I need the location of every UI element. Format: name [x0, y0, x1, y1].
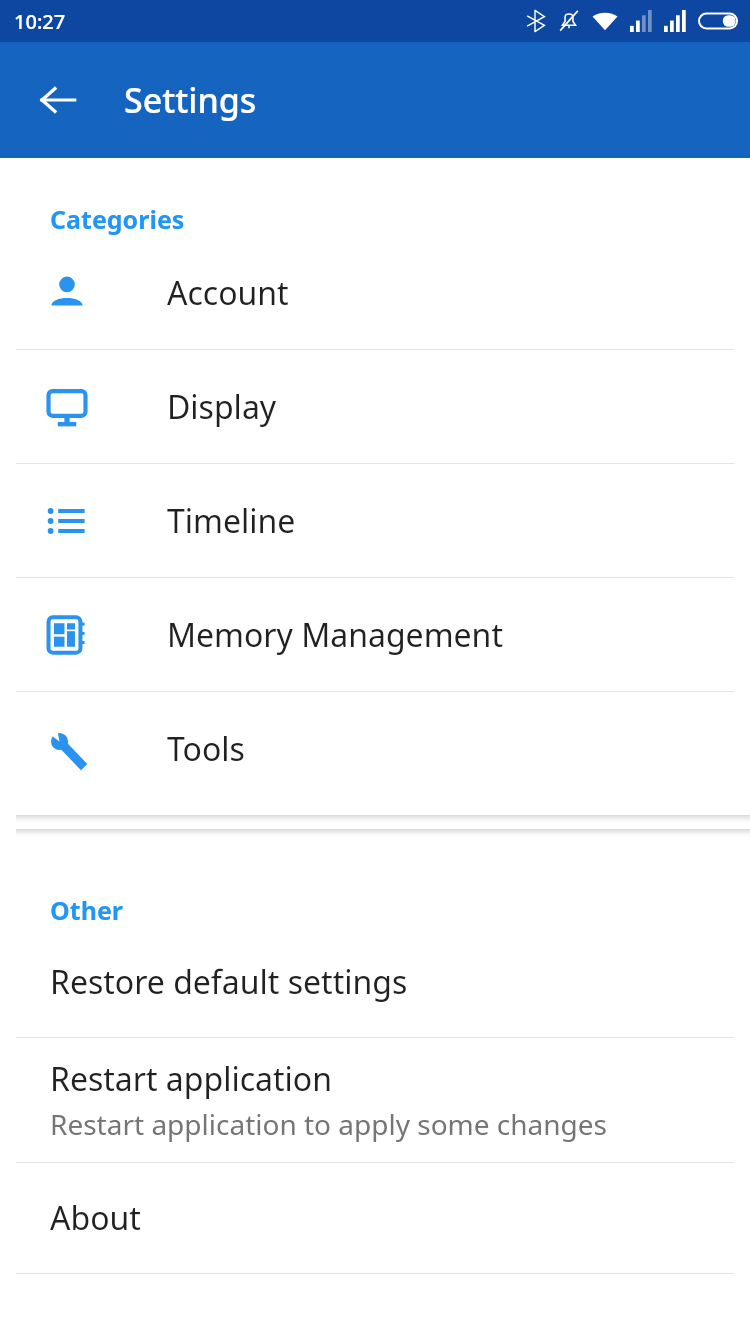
staticText: Tools	[167, 727, 245, 771]
button[interactable]: Account	[0, 236, 750, 349]
button[interactable]: Restore default settings	[0, 927, 750, 1037]
button[interactable]: Display	[0, 350, 750, 463]
staticText: Display	[167, 385, 277, 429]
staticText: About	[50, 1196, 141, 1240]
button[interactable]: Back	[22, 64, 94, 136]
staticText: Restart application to apply some change…	[50, 1105, 608, 1143]
staticText: 10:27	[14, 8, 66, 35]
staticText: Categories	[50, 202, 185, 236]
button[interactable]: Memory Management	[0, 578, 750, 691]
staticText: Restore default settings	[50, 960, 408, 1004]
staticText: Timeline	[167, 499, 296, 543]
staticText: Settings	[124, 77, 257, 123]
button[interactable]: Restart application	[0, 1038, 750, 1162]
button[interactable]: About	[0, 1163, 750, 1273]
staticText: Account	[167, 271, 289, 315]
button[interactable]: Tools	[0, 692, 750, 805]
staticText: Restart application	[50, 1057, 332, 1101]
staticText: Other	[50, 893, 123, 927]
button[interactable]: Timeline	[0, 464, 750, 577]
staticText: Memory Management	[167, 613, 503, 657]
